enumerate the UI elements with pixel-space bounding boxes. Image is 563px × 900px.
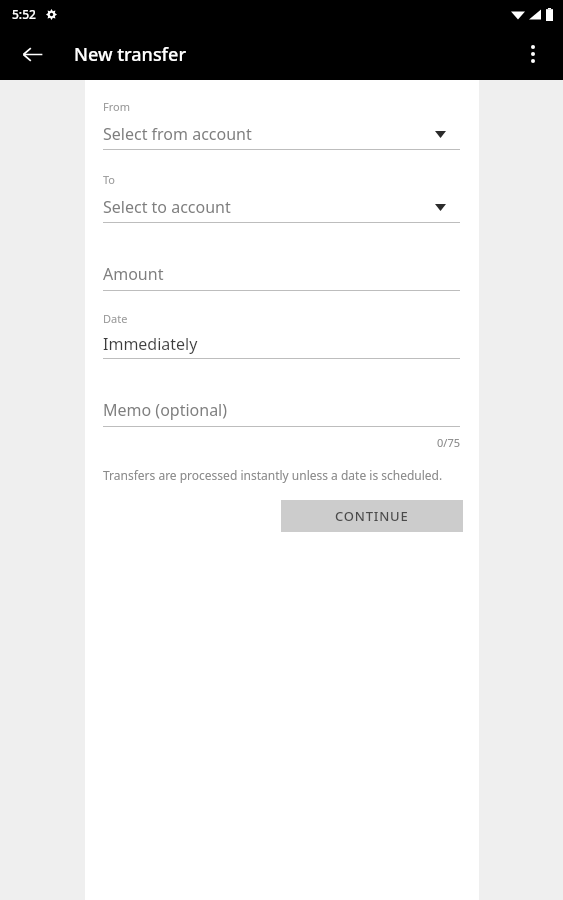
button[interactable]: CONTINUE: [281, 500, 463, 532]
staticText: To: [103, 172, 116, 187]
staticText: 5:52: [12, 6, 36, 22]
button[interactable]: Memo (optional): [103, 394, 460, 426]
button[interactable]: Select from account: [103, 118, 460, 150]
staticText: Transfers are processed instantly unless…: [103, 467, 443, 483]
staticText: Select to account: [103, 196, 231, 218]
button[interactable]: More options: [511, 32, 555, 76]
button[interactable]: Immediately: [103, 329, 460, 359]
staticText: Immediately: [103, 333, 198, 355]
staticText: Date: [103, 311, 128, 326]
staticText: 0/75: [103, 435, 460, 450]
button[interactable]: Amount: [103, 258, 460, 290]
staticText: CONTINUE: [335, 507, 409, 525]
button[interactable]: Select to account: [103, 191, 460, 223]
staticText: Amount: [103, 263, 164, 285]
staticText: New transfer: [74, 42, 186, 67]
staticText: From: [103, 99, 130, 114]
button[interactable]: Back: [10, 32, 54, 76]
staticText: Memo (optional): [103, 399, 228, 421]
staticText: Select from account: [103, 123, 252, 145]
